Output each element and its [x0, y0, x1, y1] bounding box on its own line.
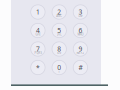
staticText: # [78, 63, 82, 72]
button[interactable]: 5 [52, 23, 66, 38]
button[interactable]: 7 [31, 42, 45, 56]
staticText: DEF [78, 14, 82, 18]
staticText: 8 [57, 44, 61, 53]
button[interactable]: 2 [52, 5, 66, 19]
staticText: 7 [36, 44, 40, 53]
button[interactable]: 6 [73, 23, 88, 38]
staticText: MNO [77, 33, 83, 36]
staticText: 9 [78, 44, 82, 53]
staticText: PQRS [34, 51, 41, 55]
button[interactable]: 1 [31, 5, 45, 19]
staticText: 3 [78, 7, 82, 16]
staticText: * [36, 63, 40, 72]
button[interactable]: 4 [31, 23, 45, 38]
staticText: + [58, 70, 60, 73]
staticText: 1 [36, 7, 40, 16]
button[interactable]: * [31, 60, 45, 75]
button[interactable]: 9 [73, 42, 88, 56]
staticText: 2 [57, 7, 61, 16]
button[interactable]: 8 [52, 42, 66, 56]
staticText: WXYZ [76, 51, 84, 55]
staticText: 6 [78, 26, 82, 35]
button[interactable]: # [73, 60, 88, 75]
staticText: JKL [57, 33, 61, 36]
staticText: 4 [36, 26, 40, 35]
staticText: ABC [56, 14, 62, 18]
staticText: 5 [57, 26, 61, 35]
staticText: GHI [35, 33, 40, 36]
button[interactable]: 0 [52, 60, 66, 75]
staticText: TUV [57, 51, 62, 55]
button[interactable]: 3 [73, 5, 88, 19]
staticText: 0 [57, 63, 61, 72]
